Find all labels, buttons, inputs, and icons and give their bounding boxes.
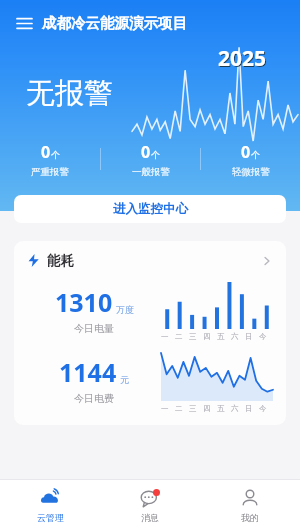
staticText: 个: [151, 149, 160, 160]
staticText: 无报警: [26, 75, 113, 112]
staticText: 严重报警: [31, 166, 69, 178]
button[interactable]: Menu: [12, 11, 36, 35]
staticText: 0: [41, 141, 51, 163]
staticText: 六: [231, 332, 245, 341]
button[interactable]: 进入监控中心: [14, 195, 286, 223]
staticText: 个: [251, 149, 260, 160]
button[interactable]: 能耗: [14, 241, 286, 425]
staticText: 2025: [218, 44, 267, 73]
staticText: 二: [175, 404, 189, 413]
staticText: 日: [245, 332, 259, 341]
button[interactable]: 0: [101, 141, 200, 178]
staticText: 今日电费: [74, 392, 114, 405]
staticText: 成都冷云能源演示项目: [42, 14, 187, 32]
staticText: 个: [51, 149, 60, 160]
button[interactable]: 消息: [100, 480, 200, 530]
staticText: 云管理: [37, 512, 64, 523]
button[interactable]: 我的: [200, 480, 300, 530]
staticText: 轻微报警: [232, 166, 270, 178]
staticText: 万度: [116, 304, 134, 315]
staticText: 元: [120, 374, 129, 385]
button[interactable]: 0: [201, 141, 300, 178]
button[interactable]: 0: [0, 141, 100, 178]
staticText: 一: [161, 332, 175, 341]
staticText: 四: [203, 332, 217, 341]
staticText: 0: [241, 141, 251, 163]
staticText: 四: [203, 404, 217, 413]
staticText: 六: [231, 404, 245, 413]
button[interactable]: 云管理: [0, 480, 100, 530]
staticText: 消息: [141, 512, 159, 523]
staticText: 日: [245, 404, 259, 413]
staticText: 能耗: [47, 252, 74, 269]
staticText: 五: [217, 404, 231, 413]
staticText: 今: [259, 404, 273, 413]
staticText: 三: [189, 332, 203, 341]
staticText: 二: [175, 332, 189, 341]
staticText: 我的: [241, 512, 259, 523]
staticText: 进入监控中心: [113, 201, 188, 217]
staticText: 今日电量: [74, 322, 114, 335]
staticText: 今: [259, 332, 273, 341]
staticText: 三: [189, 404, 203, 413]
staticText: 1144: [59, 355, 117, 389]
staticText: 一般报警: [132, 166, 170, 178]
staticText: 五: [217, 332, 231, 341]
staticText: 2025: [219, 45, 268, 74]
staticText: 1310: [55, 285, 113, 319]
staticText: 0: [141, 141, 151, 163]
staticText: 一: [161, 404, 175, 413]
